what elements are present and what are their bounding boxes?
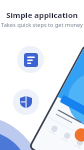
button[interactable]: Application form (17, 46, 44, 73)
staticText: Takes quick steps to get money (1, 21, 83, 29)
button[interactable]: Secure (13, 89, 39, 115)
staticText: Simple application (6, 10, 78, 21)
